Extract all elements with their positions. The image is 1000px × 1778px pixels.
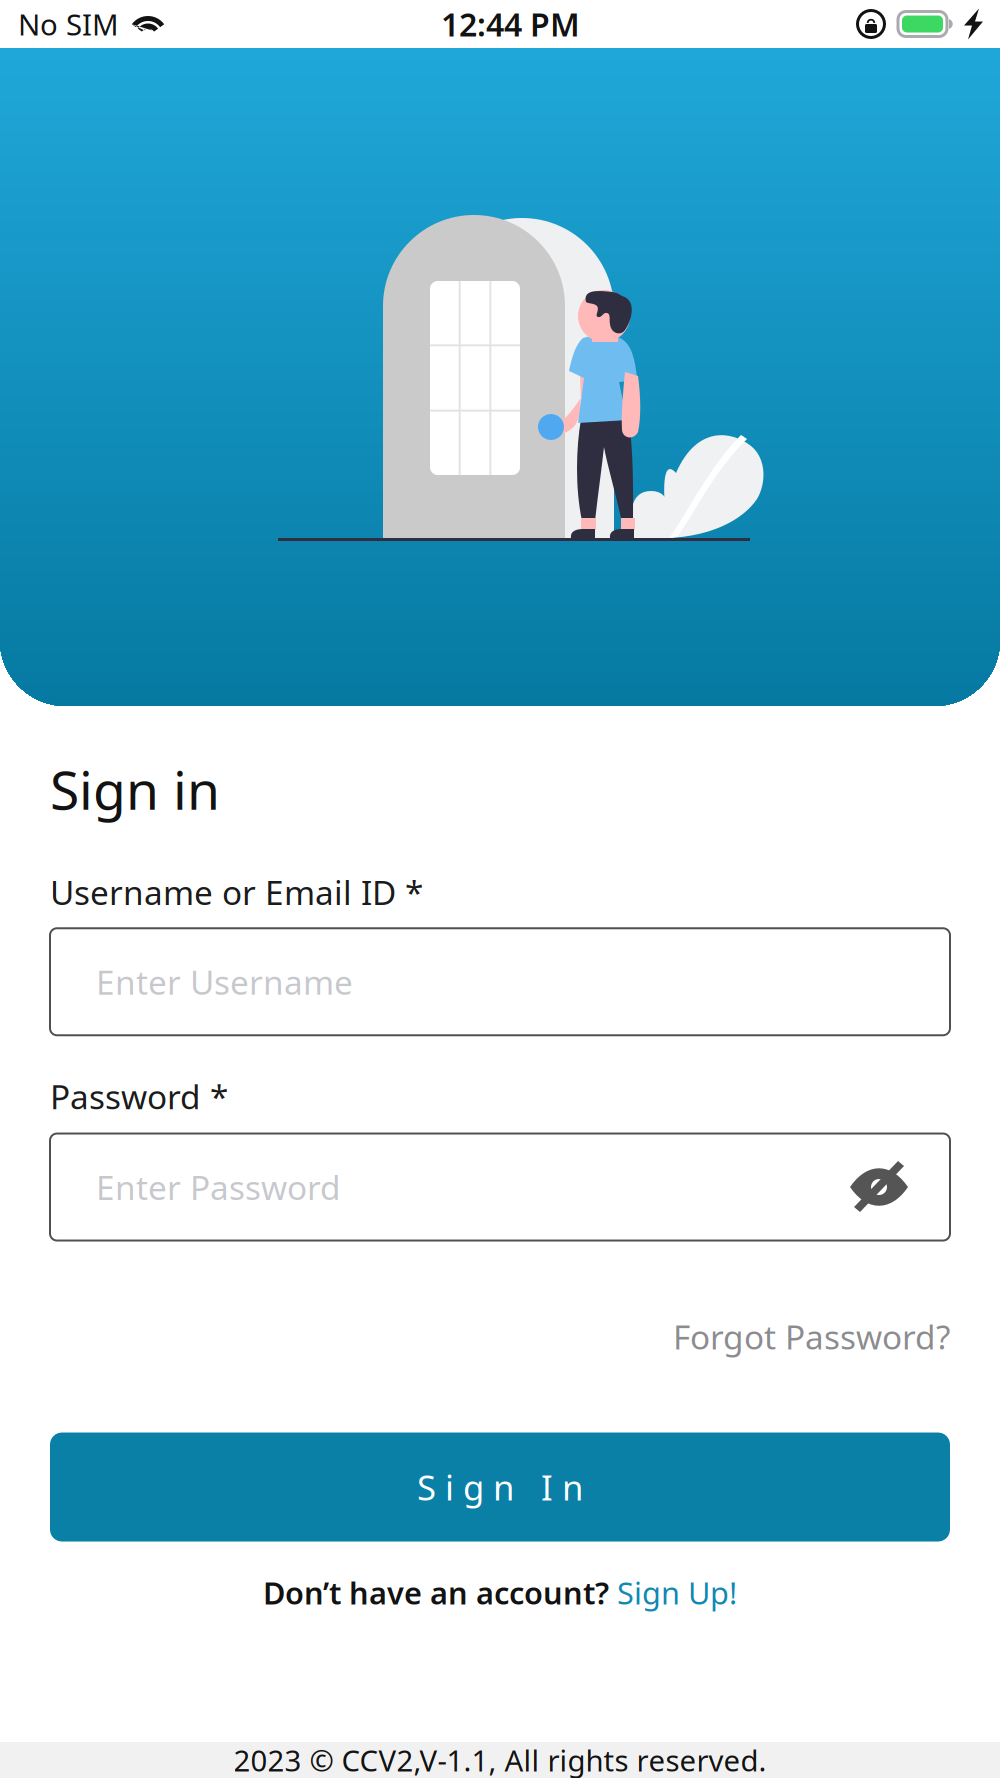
staticText: S i g n I n — [417, 1464, 583, 1510]
staticText: Forgot Password? — [673, 1314, 950, 1359]
staticText: Enter Password — [96, 1165, 341, 1209]
button[interactable]: Sign Up! — [617, 1572, 737, 1613]
staticText: 2023 © CCV2,V-1.1, All rights reserved. — [233, 1740, 766, 1778]
staticText: Sign in — [50, 754, 220, 824]
staticText: Sign Up! — [617, 1572, 737, 1613]
button[interactable]: Forgot Password? — [50, 1240, 950, 1357]
button[interactable]: S i g n I n — [50, 1432, 950, 1541]
staticText: 12:44 PM — [441, 3, 580, 45]
staticText: Password * — [50, 1074, 228, 1119]
staticText: Username or Email ID * — [50, 870, 423, 914]
staticText: Don’t have an account? — [263, 1572, 617, 1613]
staticText: No SIM — [18, 4, 119, 43]
staticText: Enter Username — [96, 960, 353, 1004]
